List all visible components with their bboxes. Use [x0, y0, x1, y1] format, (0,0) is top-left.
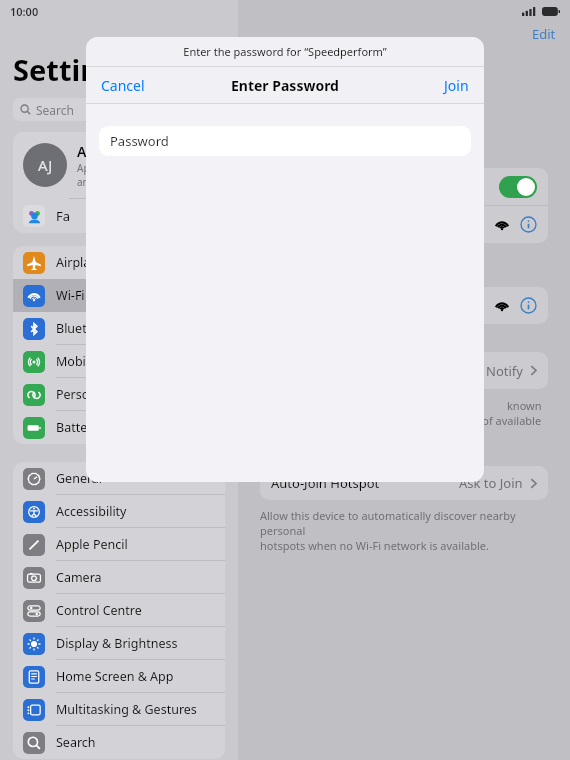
staticText: Perso — [56, 386, 90, 403]
button[interactable]: AJ — [13, 132, 225, 198]
staticText: A — [77, 142, 87, 161]
other: Signal strength — [495, 219, 509, 230]
button[interactable]: Batte — [13, 411, 225, 444]
staticText: Accessibility — [56, 503, 127, 520]
staticText: known — [507, 398, 542, 413]
button[interactable] — [260, 168, 548, 205]
button[interactable]: Notify — [260, 352, 548, 389]
button[interactable]: Secured network — [260, 287, 548, 324]
button[interactable]: More info — [520, 297, 537, 314]
staticText: Control Centre — [56, 602, 142, 619]
staticText: Apple Pencil — [56, 536, 128, 553]
staticText: Enter Password — [231, 76, 339, 95]
button[interactable]: Mobi — [13, 345, 225, 378]
staticText: Fa — [56, 207, 71, 225]
staticText: Enter the password for “Speedperform” — [183, 44, 387, 59]
button[interactable]: Edit — [529, 23, 559, 45]
other: Signal strength — [495, 300, 509, 311]
button[interactable]: Bluet — [13, 312, 225, 345]
button[interactable]: Join — [429, 70, 484, 101]
staticText: Password — [110, 132, 169, 150]
staticText: Camera — [56, 569, 102, 586]
staticText: Notify — [486, 362, 523, 380]
staticText: Ask to Join — [459, 474, 523, 492]
button[interactable]: Control Centre — [13, 594, 225, 627]
staticText: Edit — [532, 25, 556, 43]
button[interactable]: Fa — [13, 199, 225, 233]
button[interactable]: Display & Brightness — [13, 627, 225, 660]
staticText: Ap — [77, 161, 90, 175]
staticText: AJ — [38, 155, 53, 175]
button[interactable]: Airpla — [13, 246, 225, 279]
button[interactable]: Multitasking & Gestures — [13, 693, 225, 726]
staticText: ks, and — [260, 122, 297, 137]
button[interactable]: Perso — [13, 378, 225, 411]
staticText: General — [56, 470, 103, 487]
button[interactable]: Search — [13, 726, 225, 759]
button[interactable]: Apple Pencil — [13, 528, 225, 561]
staticText: Auto-Join Hotspot — [271, 474, 380, 492]
button[interactable]: Accessibility — [13, 495, 225, 528]
staticText: Home Screen & App Library — [56, 668, 215, 685]
staticText: Multitasking & Gestures — [56, 701, 197, 718]
button[interactable]: Wi-Fi — [13, 279, 225, 312]
button[interactable]: More info — [520, 216, 537, 233]
staticText: Search — [56, 734, 96, 751]
button[interactable]: Camera — [13, 561, 225, 594]
button[interactable]: Auto-Join Hotspot — [260, 466, 548, 500]
staticText: 10:00 — [10, 4, 39, 19]
staticText: Batte — [56, 419, 88, 436]
staticText: Join — [444, 76, 469, 95]
button[interactable]: Password — [99, 126, 471, 156]
staticText: Search — [36, 102, 74, 118]
staticText: Airpla — [56, 254, 91, 271]
staticText: Cancel — [101, 76, 145, 95]
button[interactable]: Cancel — [86, 70, 160, 101]
button[interactable]: Search — [13, 98, 225, 121]
button[interactable]: Home Screen & App Library — [13, 660, 225, 693]
staticText: Wi-Fi — [56, 287, 85, 304]
staticText: Display & Brightness — [56, 635, 178, 652]
staticText: Allow this device to automatically disco… — [260, 508, 548, 538]
staticText: Settings — [13, 50, 132, 89]
staticText: an — [77, 175, 89, 189]
staticText: Bluet — [56, 320, 87, 337]
staticText: hotspots when no Wi-Fi network is availa… — [260, 538, 489, 553]
staticText: networks are available, you will be noti… — [260, 413, 542, 428]
staticText: Mobi — [56, 353, 86, 370]
button[interactable]: General — [13, 462, 225, 495]
button[interactable]: Secured network — [260, 206, 548, 243]
